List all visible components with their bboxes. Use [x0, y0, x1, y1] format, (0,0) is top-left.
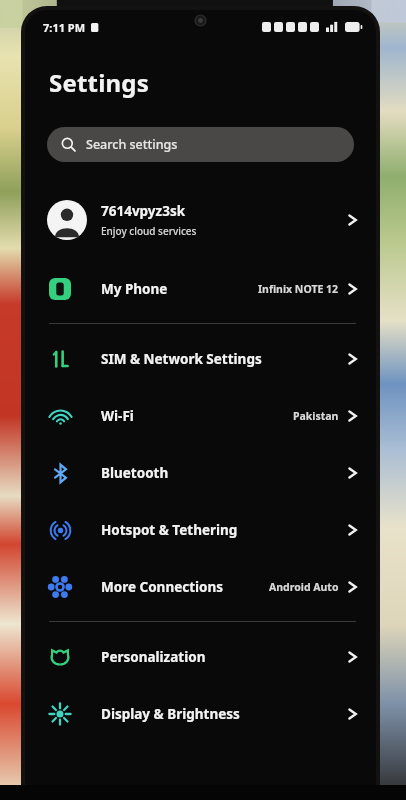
staticText: Search settings [86, 136, 178, 153]
staticText: 7:11 PM [43, 20, 86, 35]
staticText: Hotspot & Tethering [101, 521, 347, 539]
button[interactable]: Hotspot & Tethering [25, 501, 376, 558]
button[interactable]: Display & Brightness [25, 685, 376, 742]
staticText: Settings [49, 66, 149, 99]
button[interactable]: 7614vpyz3sk [25, 192, 376, 248]
staticText: 7614vpyz3sk [101, 202, 186, 220]
staticText: Android Auto [269, 580, 339, 594]
button[interactable]: Search settings [47, 127, 354, 162]
button[interactable]: Bluetooth [25, 444, 376, 501]
button[interactable]: My Phone [25, 260, 376, 317]
button[interactable]: More Connections [25, 558, 376, 615]
staticText: Display & Brightness [101, 705, 347, 723]
staticText: Bluetooth [101, 464, 347, 482]
button[interactable]: SIM & Network Settings [25, 330, 376, 387]
button[interactable]: Personalization [25, 628, 376, 685]
staticText: Infinix NOTE 12 [258, 282, 339, 296]
staticText: More Connections [101, 578, 269, 596]
staticText: Wi-Fi [101, 407, 293, 425]
staticText: SIM & Network Settings [101, 350, 347, 368]
staticText: My Phone [101, 280, 258, 298]
staticText: Pakistan [293, 409, 339, 423]
staticText: Enjoy cloud services [101, 224, 197, 238]
button[interactable]: Wi-Fi [25, 387, 376, 444]
staticText: Personalization [101, 648, 347, 666]
